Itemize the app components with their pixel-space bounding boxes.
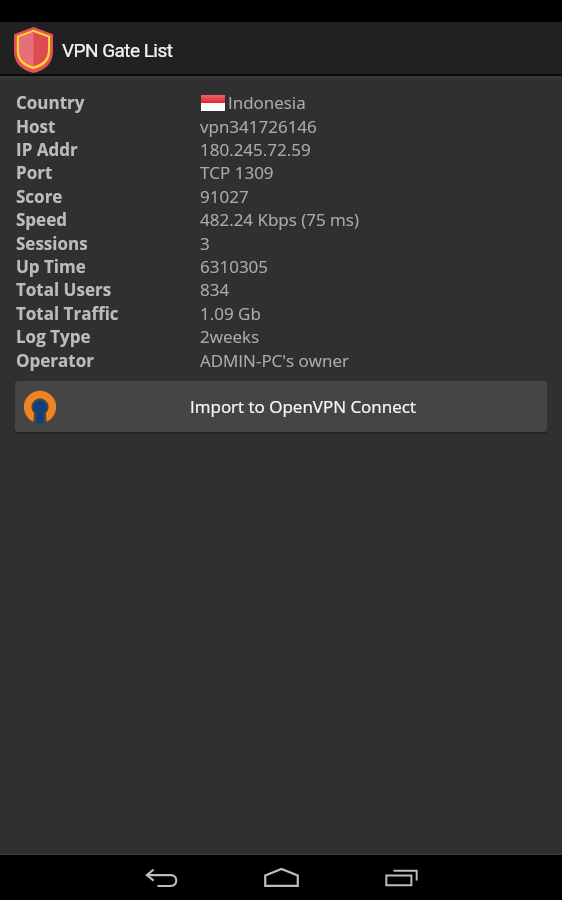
staticText: Up Time [16,255,86,278]
staticText: IP Addr [16,138,78,161]
staticText: Operator [16,349,94,372]
staticText: Indonesia [228,91,306,114]
staticText: Score [16,185,63,208]
staticText: Import to OpenVPN Connect [190,395,416,418]
staticText: Total Traffic [16,302,119,325]
staticText: Country [16,91,85,114]
staticText: Total Users [16,278,112,301]
staticText: TCP 1309 [200,161,274,184]
staticText: 91027 [200,185,249,208]
staticText: vpn341726146 [200,115,317,138]
staticText: 2weeks [200,325,260,348]
staticText: Sessions [16,232,88,255]
staticText: Speed [16,208,67,231]
staticText: ADMIN-PC's owner [200,349,349,372]
staticText: 834 [200,278,230,301]
staticText: 1.09 Gb [200,302,261,325]
staticText: Log Type [16,325,91,348]
button[interactable]: Import to OpenVPN Connect [15,381,547,432]
staticText: VPN Gate List [62,39,173,61]
staticText: 6310305 [200,255,269,278]
staticText: 482.24 Kbps (75 ms) [200,208,359,231]
staticText: 3 [200,232,210,255]
staticText: Host [16,115,56,138]
button[interactable]: Recent apps [370,855,432,900]
staticText: 180.245.72.59 [200,138,311,161]
staticText: Port [16,161,53,184]
button[interactable]: Home [250,855,312,900]
button[interactable]: Back [130,855,192,900]
